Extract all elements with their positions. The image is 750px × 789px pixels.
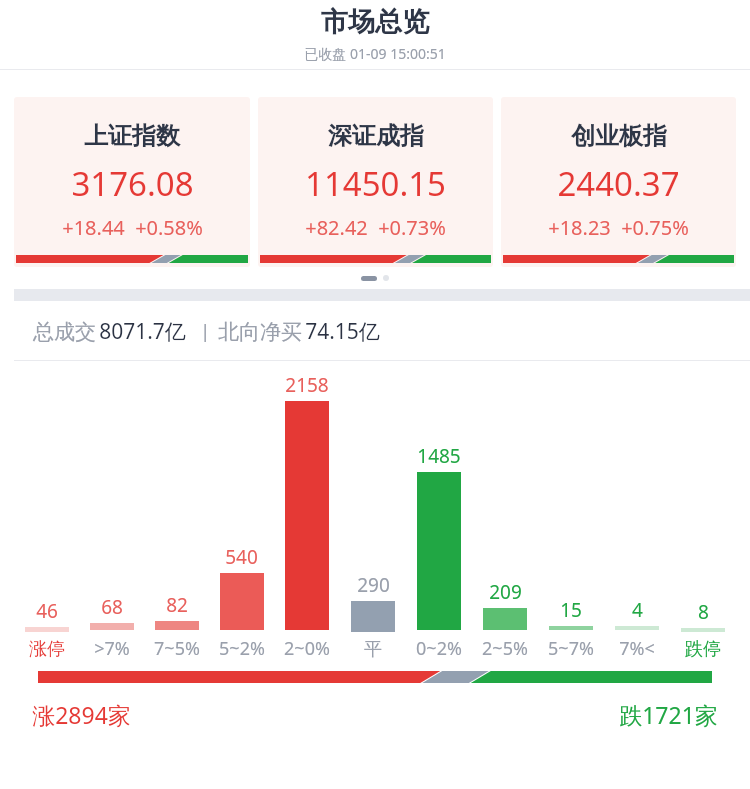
staticText: 2~0% (284, 636, 330, 661)
staticText: 深证成指 (328, 121, 424, 151)
staticText: 5~2% (219, 636, 265, 661)
staticText: 涨2894家 (32, 699, 131, 730)
staticText: 2440.37 (557, 161, 680, 206)
button[interactable]: 15 (538, 361, 604, 663)
button[interactable]: 1485 (406, 361, 472, 663)
button[interactable]: 290 (340, 361, 406, 663)
button[interactable]: 540 (209, 361, 274, 663)
button[interactable]: 82 (144, 361, 209, 663)
staticText: 3176.08 (71, 161, 194, 206)
staticText: 跌停 (685, 638, 721, 661)
button[interactable] (38, 671, 712, 683)
staticText: 68 (101, 594, 123, 620)
staticText: 7%< (619, 636, 655, 661)
staticText: 0~2% (416, 636, 462, 661)
staticText: 5~7% (548, 636, 594, 661)
staticText: >7% (94, 636, 130, 661)
staticText: | (186, 319, 215, 344)
staticText: +18.44 (62, 214, 125, 241)
staticText: 2158 (285, 372, 329, 398)
button[interactable]: 2158 (274, 361, 340, 663)
button[interactable]: 创业板指 (501, 97, 736, 267)
staticText: 2~5% (482, 636, 528, 661)
staticText: 209 (489, 579, 522, 605)
button[interactable]: 总成交 (0, 301, 750, 361)
staticText: +0.58% (135, 214, 203, 241)
staticText: 上证指数 (84, 121, 180, 151)
button[interactable]: 8 (670, 361, 736, 663)
staticText: 平 (364, 638, 382, 661)
staticText: 74.15亿 (305, 317, 380, 346)
button[interactable]: 209 (472, 361, 538, 663)
staticText: +82.42 (305, 214, 368, 241)
button[interactable]: 4 (604, 361, 670, 663)
staticText: 82 (166, 592, 188, 618)
staticText: 8071.7亿 (99, 317, 186, 346)
staticText: 290 (357, 572, 390, 598)
staticText: 北向净买 (215, 317, 305, 346)
staticText: 11450.15 (305, 161, 446, 206)
button[interactable]: 上证指数 (14, 97, 250, 267)
staticText: 已收盘 01-09 15:00:51 (304, 44, 446, 63)
button[interactable]: 68 (79, 361, 144, 663)
staticText: 15 (560, 597, 582, 623)
staticText: +18.23 (548, 214, 611, 241)
staticText: 7~5% (154, 636, 200, 661)
staticText: 8 (698, 599, 709, 625)
staticText: 1485 (417, 443, 461, 469)
button[interactable]: 46 (14, 361, 79, 663)
staticText: 总成交 (30, 317, 99, 346)
button[interactable]: 深证成指 (258, 97, 493, 267)
staticText: +0.73% (378, 214, 446, 241)
staticText: 540 (225, 544, 258, 570)
staticText: 跌1721家 (619, 699, 718, 730)
staticText: 市场总览 (321, 5, 429, 39)
staticText: +0.75% (621, 214, 689, 241)
staticText: 46 (36, 598, 58, 624)
staticText: 4 (632, 597, 643, 623)
staticText: 创业板指 (571, 121, 667, 151)
staticText: 涨停 (29, 638, 65, 661)
